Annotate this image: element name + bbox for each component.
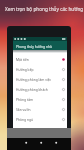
staticText: Phòng ngủ: [16, 117, 34, 121]
staticText: Hướng phòng làm việc: [16, 77, 52, 81]
button[interactable]: Hướng bếp: [13, 64, 67, 74]
other: Navigation bar: [7, 138, 71, 150]
staticText: Sân vườn: [16, 107, 31, 111]
button[interactable]: Mặt tiền: [13, 54, 67, 64]
staticText: Hướng phòng khách: [16, 87, 48, 91]
button[interactable]: Phòng ngủ: [13, 114, 67, 124]
staticText: Hướng bếp: [16, 67, 34, 71]
staticText: Xem trọn bộ phong thủy các hướng: [5, 6, 84, 12]
staticText: Phong thủy hướng nhà: [16, 44, 52, 48]
button[interactable]: Hướng phòng khách: [13, 84, 67, 94]
button[interactable]: Sân vườn: [13, 104, 67, 114]
button[interactable]: Phòng tắm: [13, 94, 67, 104]
staticText: Phòng tắm: [16, 97, 34, 101]
button[interactable]: Hướng phòng làm việc: [13, 74, 67, 84]
staticText: Mặt tiền: [16, 57, 29, 61]
